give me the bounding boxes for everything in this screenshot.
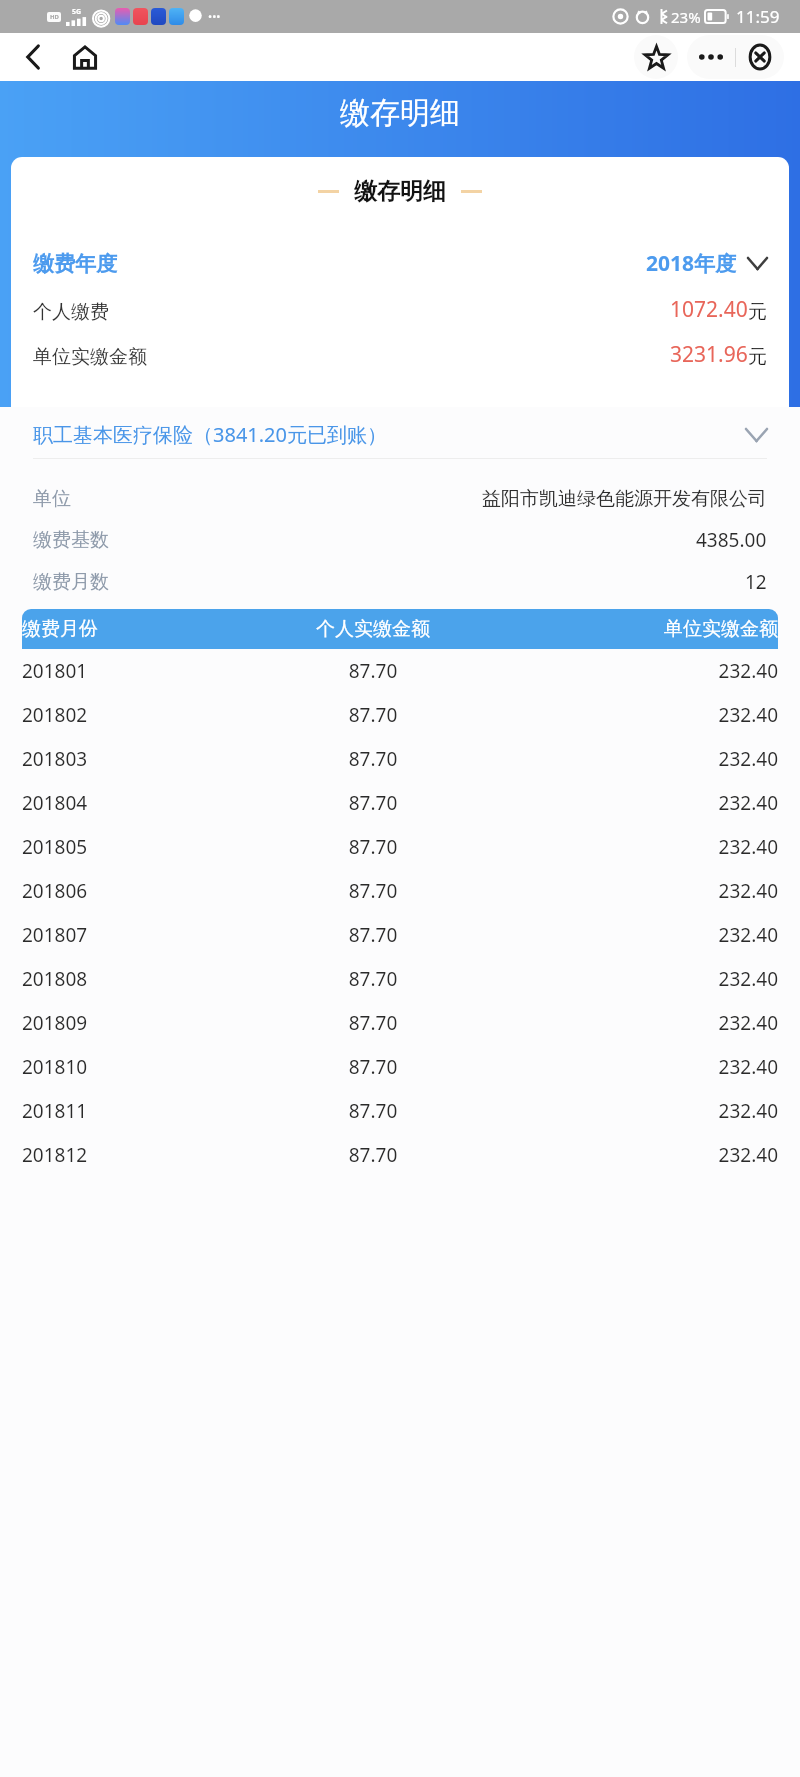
button[interactable]: 201801 [11,649,789,693]
button[interactable]: 201806 [11,869,789,913]
button[interactable]: Favorite [634,35,678,79]
staticText: 缴存明细 [354,177,446,206]
staticText: 232.40 [508,702,778,728]
staticText: 个人实缴金额 [238,617,508,641]
staticText: 232.40 [508,878,778,904]
staticText: 12 [745,569,767,595]
staticText: 2018年度 [646,249,737,278]
staticText: 单位 [33,487,71,511]
button[interactable]: 201811 [11,1089,789,1133]
staticText: 87.70 [238,922,508,948]
staticText: 87.70 [238,1098,508,1124]
staticText: 个人缴费 [33,300,109,324]
staticText: 缴费基数 [33,528,109,552]
staticText: 87.70 [238,1054,508,1080]
staticText: 元 [748,300,767,324]
staticText: 87.70 [238,658,508,684]
staticText: 87.70 [238,1010,508,1036]
button[interactable]: 201807 [11,913,789,957]
staticText: 232.40 [508,834,778,860]
button[interactable]: Close [736,35,784,79]
staticText: 3231.96 [670,340,748,369]
button[interactable]: 201809 [11,1001,789,1045]
button[interactable]: Back [16,40,50,74]
staticText: 201803 [22,746,238,772]
staticText: 201810 [22,1054,238,1080]
button[interactable]: More options [687,35,735,79]
staticText: 201801 [22,658,238,684]
button[interactable]: Home [67,39,103,75]
staticText: 232.40 [508,1010,778,1036]
staticText: 缴费年度 [33,251,117,277]
staticText: 232.40 [508,1098,778,1124]
staticText: 87.70 [238,1142,508,1168]
staticText: 5G [72,7,82,17]
staticText: 87.70 [238,834,508,860]
staticText: ••• [208,9,221,24]
staticText: 201804 [22,790,238,816]
staticText: 4385.00 [696,527,767,553]
staticText: 87.70 [238,702,508,728]
staticText: 单位实缴金额 [33,345,147,369]
staticText: 缴费月份 [22,617,238,641]
staticText: 232.40 [508,1142,778,1168]
staticText: 87.70 [238,790,508,816]
staticText: HD [50,13,59,21]
staticText: 232.40 [508,922,778,948]
button[interactable]: 201810 [11,1045,789,1089]
staticText: 201809 [22,1010,238,1036]
staticText: 201808 [22,966,238,992]
staticText: 232.40 [508,746,778,772]
staticText: 87.70 [238,746,508,772]
staticText: 201806 [22,878,238,904]
staticText: 缴费月数 [33,570,109,594]
staticText: 11:59 [736,5,780,28]
staticText: 232.40 [508,658,778,684]
button[interactable]: 201803 [11,737,789,781]
staticText: 201807 [22,922,238,948]
staticText: 元 [748,345,767,369]
button[interactable]: 缴费年度 [11,240,789,287]
staticText: 益阳市凯迪绿色能源开发有限公司 [482,487,767,511]
button[interactable]: 201808 [11,957,789,1001]
staticText: 232.40 [508,1054,778,1080]
staticText: 201812 [22,1142,238,1168]
staticText: 87.70 [238,878,508,904]
staticText: 201811 [22,1098,238,1124]
staticText: 201802 [22,702,238,728]
staticText: 87.70 [238,966,508,992]
staticText: 232.40 [508,966,778,992]
button[interactable]: 201804 [11,781,789,825]
button[interactable]: 201805 [11,825,789,869]
button[interactable]: 201812 [11,1133,789,1177]
staticText: 23% [671,7,701,27]
staticText: 232.40 [508,790,778,816]
staticText: 1072.40 [670,295,748,324]
button[interactable]: 职工基本医疗保险（3841.20元已到账） [11,421,789,448]
staticText: 201805 [22,834,238,860]
staticText: 缴存明细 [0,94,800,132]
staticText: 单位实缴金额 [508,617,778,641]
staticText: 职工基本医疗保险（3841.20元已到账） [33,421,736,448]
button[interactable]: 201802 [11,693,789,737]
